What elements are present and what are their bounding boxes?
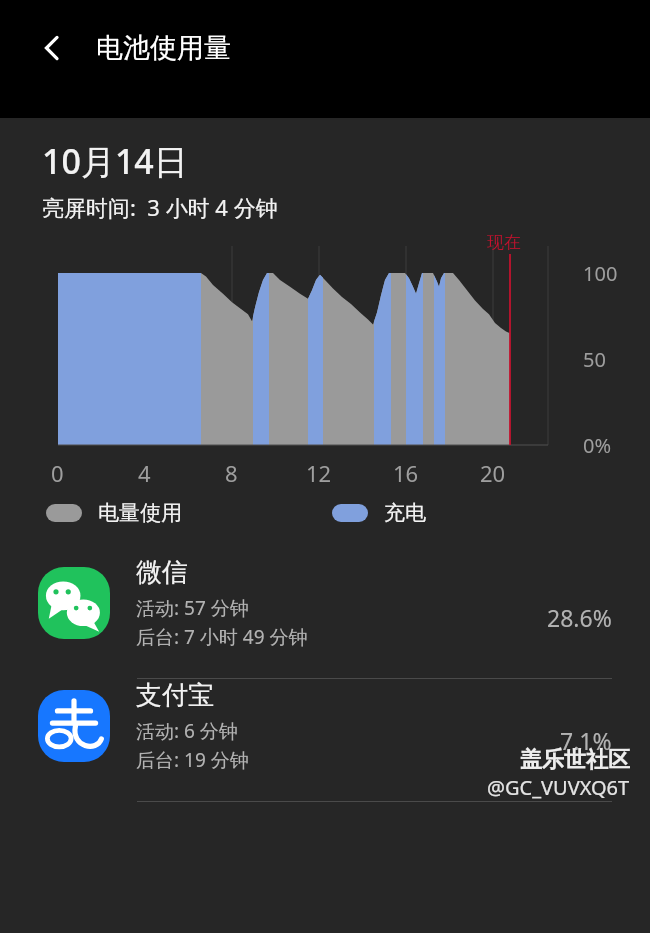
staticText: 50 — [583, 346, 606, 373]
staticText: 电池使用量 — [96, 31, 231, 65]
staticText: 充电 — [384, 500, 426, 526]
staticText: 亮屏时间: 3 小时 4 分钟 — [42, 192, 278, 222]
staticText: 20 — [480, 458, 506, 488]
staticText: 8 — [225, 458, 238, 488]
button[interactable]: 微信 — [0, 556, 650, 678]
staticText: 28.6% — [547, 602, 612, 633]
staticText: 7.1% — [560, 725, 612, 756]
staticText: @GC_VUVXQ6T — [487, 774, 630, 801]
button[interactable]: Back — [28, 24, 76, 72]
staticText: 0 — [51, 458, 64, 488]
staticText: 10月14日 — [42, 138, 188, 184]
staticText: 活动: 57 分钟 — [136, 595, 249, 621]
staticText: 现在 — [487, 232, 521, 253]
button[interactable]: 电量使用 — [46, 500, 182, 526]
staticText: 活动: 6 分钟 — [136, 718, 238, 744]
button[interactable]: 充电 — [332, 500, 426, 526]
staticText: 16 — [393, 458, 419, 488]
staticText: 支付宝 — [136, 679, 214, 712]
staticText: 盖乐世社区 — [520, 746, 630, 774]
staticText: 12 — [306, 458, 332, 488]
staticText: 4 — [138, 458, 151, 488]
staticText: 后台: 19 分钟 — [136, 747, 249, 773]
staticText: 后台: 7 小时 49 分钟 — [136, 624, 308, 650]
staticText: 微信 — [136, 556, 188, 589]
staticText: 电量使用 — [98, 500, 182, 526]
staticText: 0% — [583, 432, 612, 459]
button[interactable]: 支付宝 — [0, 679, 650, 801]
staticText: 100 — [583, 260, 618, 287]
